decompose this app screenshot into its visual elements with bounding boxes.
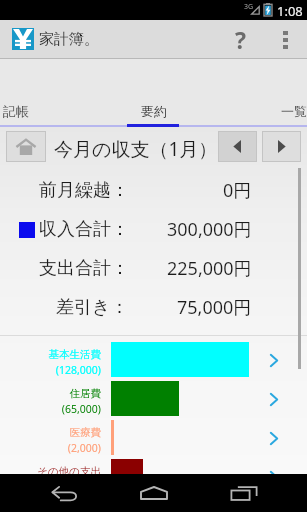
button[interactable]: 差引き： (0, 288, 307, 327)
staticText: 支出合計： (39, 257, 129, 280)
button[interactable]: 記帳 (0, 59, 102, 127)
staticText: 基本生活費 (48, 348, 101, 361)
button[interactable]: 住居費 (0, 379, 307, 418)
button[interactable]: 一覧 (205, 59, 307, 127)
staticText: 要約 (141, 103, 167, 119)
staticText: 差引き： (56, 296, 129, 319)
staticText: 300,000円 (167, 217, 252, 242)
button[interactable]: Recent apps (208, 474, 280, 512)
staticText: 225,000円 (167, 256, 252, 281)
staticText: ? (235, 24, 246, 55)
staticText: 0円 (223, 178, 252, 203)
button[interactable]: 要約 (102, 59, 205, 127)
button[interactable]: 収入合計： (0, 210, 307, 249)
staticText: 収入合計： (39, 218, 129, 241)
staticText: (128,000) (55, 363, 101, 377)
staticText: 1:08 (277, 2, 303, 20)
button[interactable]: Back (28, 474, 100, 512)
button[interactable]: Home (118, 474, 190, 512)
button[interactable]: その他の支出 (0, 457, 307, 496)
button[interactable]: 前月繰越： (0, 171, 307, 210)
button[interactable]: 基本生活費 (0, 340, 307, 379)
button[interactable]: 医療費 (0, 418, 307, 457)
staticText: (65,000) (61, 402, 101, 416)
staticText: 今月の収支（1月） (54, 136, 218, 162)
button[interactable]: 支出合計： (0, 249, 307, 288)
staticText: 家計簿。 (39, 30, 99, 49)
staticText: 3G (244, 2, 254, 12)
button[interactable]: Next month (262, 131, 301, 162)
staticText: 住居費 (69, 387, 101, 400)
staticText: 医療費 (69, 426, 101, 439)
button[interactable]: More options (266, 20, 305, 59)
staticText: (30,000) (61, 480, 101, 494)
staticText: (2,000) (67, 441, 101, 455)
button[interactable]: Help (218, 20, 262, 59)
button[interactable]: Previous month (218, 131, 257, 162)
staticText: 一覧 (281, 103, 307, 119)
staticText: 75,000円 (177, 295, 252, 320)
staticText: 前月繰越： (39, 179, 129, 202)
button[interactable]: Home (6, 131, 46, 162)
staticText: その他の支出 (37, 465, 101, 478)
staticText: 記帳 (3, 103, 29, 119)
